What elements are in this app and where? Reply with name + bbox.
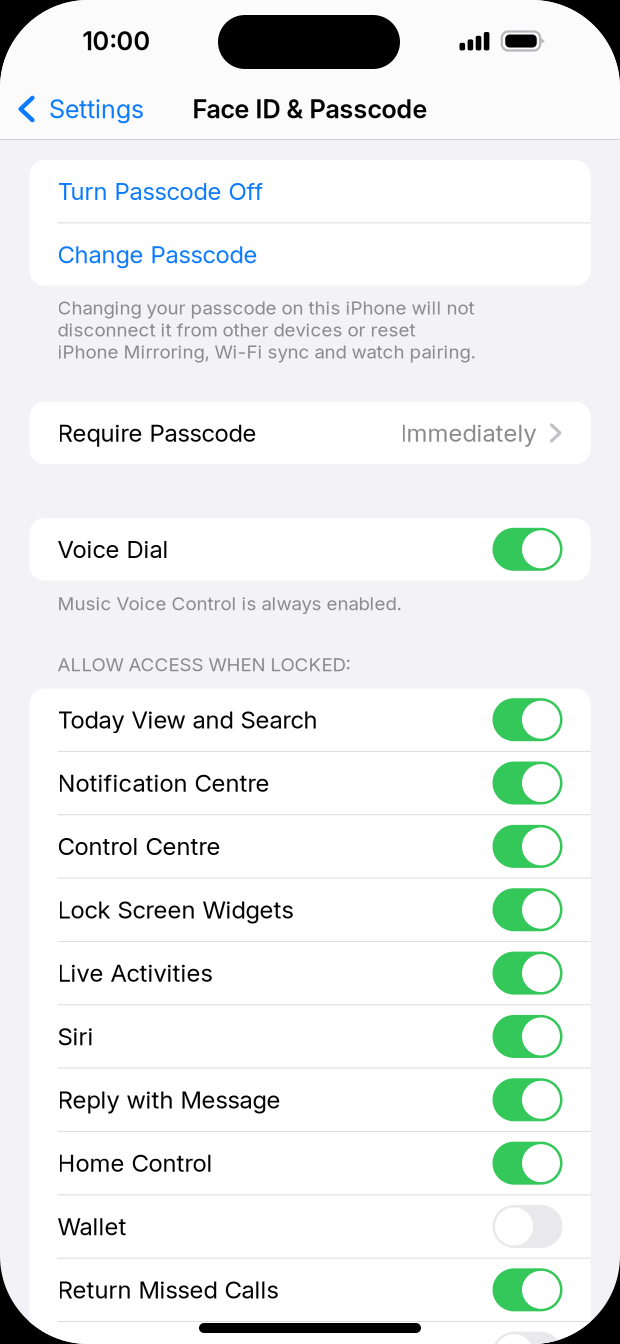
button[interactable]: Notification Centre: [29, 752, 590, 814]
button[interactable]: Wallet: [29, 1195, 590, 1258]
button[interactable]: Lock Screen Widgets: [29, 879, 590, 941]
staticText: Changing your passcode on this iPhone wi…: [57, 297, 475, 363]
button[interactable]: Voice Dial: [29, 518, 590, 580]
button[interactable]: Change Passcode: [29, 223, 590, 286]
staticText: Face ID & Passcode: [192, 94, 427, 124]
button[interactable]: Control Centre: [29, 815, 590, 878]
staticText: Reply with Message: [57, 1086, 280, 1114]
staticText: Notification Centre: [57, 769, 269, 797]
button[interactable]: Reply with Message: [29, 1069, 590, 1131]
staticText: Control Centre: [57, 832, 220, 860]
staticText: Music Voice Control is always enabled.: [57, 592, 401, 614]
button[interactable]: Return Missed Calls: [29, 1259, 590, 1321]
button[interactable]: Settings: [0, 78, 144, 140]
staticText: Siri: [57, 1022, 93, 1051]
button[interactable]: Live Activities: [29, 942, 590, 1004]
staticText: Settings: [49, 94, 144, 124]
staticText: Accessories: [57, 1339, 192, 1344]
staticText: Lock Screen Widgets: [57, 896, 293, 924]
staticText: Immediately: [400, 419, 536, 447]
button[interactable]: Require Passcode: [29, 402, 590, 464]
button[interactable]: Siri: [29, 1005, 590, 1068]
staticText: Voice Dial: [57, 535, 168, 563]
staticText: Home Control: [57, 1149, 212, 1177]
staticText: Today View and Search: [57, 705, 317, 734]
staticText: Require Passcode: [57, 419, 256, 447]
staticText: Live Activities: [57, 959, 212, 987]
staticText: Turn Passcode Off: [57, 177, 263, 205]
staticText: Wallet: [57, 1212, 126, 1241]
button[interactable]: Accessories: [29, 1322, 590, 1344]
staticText: 10:00: [82, 26, 150, 56]
staticText: Return Missed Calls: [57, 1276, 278, 1304]
button[interactable]: Turn Passcode Off: [29, 160, 590, 222]
staticText: Change Passcode: [57, 240, 257, 269]
button[interactable]: Today View and Search: [29, 688, 590, 751]
staticText: ALLOW ACCESS WHEN LOCKED:: [57, 653, 350, 675]
button[interactable]: Home Control: [29, 1132, 590, 1194]
